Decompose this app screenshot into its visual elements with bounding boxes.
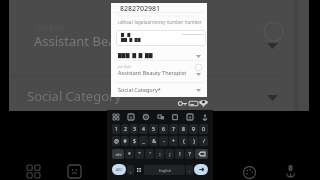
- staticText: #: [123, 138, 127, 145]
- button[interactable]: 0: [199, 124, 208, 134]
- staticText: ▇▇▇ ▇ ▇ ▇▇: [118, 52, 153, 59]
- button[interactable]: *: [125, 149, 134, 159]
- staticText: 7: [172, 126, 175, 133]
- button[interactable]: 5: [149, 124, 158, 134]
- button[interactable]: :: [155, 149, 164, 159]
- button[interactable]: &: [149, 136, 158, 146]
- staticText: 8: [182, 126, 185, 133]
- button[interactable]: Translate: [156, 112, 165, 121]
- button[interactable]: English: [144, 165, 185, 175]
- staticText: 5: [152, 126, 155, 133]
- button[interactable]: $: [130, 136, 138, 146]
- staticText: (: [183, 138, 185, 145]
- staticText: ,: [130, 168, 132, 173]
- staticText: Social Category: [27, 87, 122, 105]
- staticText: ▇ ▇ ·: [121, 32, 134, 37]
- button[interactable]: Settings: [141, 112, 150, 121]
- staticText: 4: [142, 126, 145, 133]
- button[interactable]: ): [189, 136, 198, 146]
- button[interactable]: Backspace: [195, 149, 208, 159]
- staticText: ABC: [116, 167, 123, 172]
- staticText: Assistant Beauty Therapist: [118, 69, 187, 76]
- button[interactable]: ?: [185, 149, 194, 159]
- button[interactable]: 3: [130, 124, 138, 134]
- button[interactable]: 7: [169, 124, 178, 134]
- button[interactable]: !: [175, 149, 184, 159]
- button[interactable]: ABC: [112, 164, 126, 175]
- staticText: 8282702981: [120, 4, 161, 14]
- staticText: 9: [192, 126, 195, 133]
- staticText: :: [159, 151, 161, 158]
- staticText: 1: [115, 126, 118, 133]
- button[interactable]: Voice: [200, 112, 209, 121]
- button[interactable]: Voice input: [284, 164, 297, 177]
- staticText: 3: [133, 126, 136, 133]
- staticText: ;: [169, 151, 171, 158]
- staticText: Social Category*: [118, 86, 161, 93]
- button[interactable]: ': [145, 149, 154, 159]
- button[interactable]: Passwords: [178, 99, 187, 108]
- staticText: 0: [202, 126, 205, 133]
- button[interactable]: ;: [165, 149, 174, 159]
- button[interactable]: 8: [179, 124, 188, 134]
- staticText: ': [149, 151, 151, 158]
- button[interactable]: GIF: [126, 112, 135, 121]
- staticText: ": [138, 151, 141, 158]
- button[interactable]: 1: [112, 124, 120, 134]
- button[interactable]: Stickers: [68, 165, 81, 178]
- button[interactable]: 4: [139, 124, 148, 134]
- button[interactable]: Themes: [243, 166, 256, 179]
- staticText: *: [128, 151, 131, 158]
- staticText: udhaar lagataarmorey number number: [118, 19, 202, 25]
- button[interactable]: 9: [189, 124, 198, 134]
- button[interactable]: ": [135, 149, 144, 159]
- button[interactable]: Emoji: [185, 112, 194, 121]
- staticText: Job Role: [118, 64, 132, 69]
- button[interactable]: .: [186, 165, 193, 175]
- staticText: ▇▇ ▇ ▇▇: [121, 37, 141, 42]
- staticText: Tap to autofill your saved number below: [118, 13, 194, 18]
- button[interactable]: _: [139, 136, 148, 146]
- staticText: ): [193, 138, 195, 145]
- button[interactable]: Clipboard: [170, 112, 179, 121]
- button[interactable]: Enter: [194, 164, 208, 175]
- staticText: .: [189, 168, 191, 173]
- button[interactable]: Payment cards: [189, 99, 198, 108]
- button[interactable]: Apps: [27, 165, 40, 178]
- button[interactable]: ,: [127, 165, 134, 175]
- button[interactable]: +: [169, 136, 178, 146]
- button[interactable]: 2: [121, 124, 129, 134]
- staticText: !: [179, 151, 181, 158]
- staticText: =\<: [115, 152, 122, 157]
- staticText: @: [114, 138, 119, 145]
- button[interactable]: Emoji: [135, 165, 143, 175]
- staticText: English: [159, 168, 171, 173]
- button[interactable]: -: [159, 136, 168, 146]
- staticText: /: [203, 138, 205, 145]
- button[interactable]: @: [112, 136, 120, 146]
- staticText: -: [163, 138, 165, 145]
- button[interactable]: Addresses: [199, 99, 208, 108]
- staticText: 6: [162, 126, 165, 133]
- staticText: $: [133, 138, 136, 145]
- staticText: ?: [188, 151, 191, 158]
- button[interactable]: Apps: [111, 112, 120, 121]
- staticText: 2: [124, 126, 127, 133]
- button[interactable]: =\<: [112, 149, 124, 159]
- staticText: &: [152, 138, 156, 145]
- button[interactable]: 6: [159, 124, 168, 134]
- staticText: +: [172, 138, 175, 145]
- button[interactable]: #: [121, 136, 129, 146]
- staticText: Assistant Beauty Therapist: [34, 32, 196, 50]
- staticText: _: [142, 138, 145, 145]
- button[interactable]: /: [199, 136, 208, 146]
- button[interactable]: (: [179, 136, 188, 146]
